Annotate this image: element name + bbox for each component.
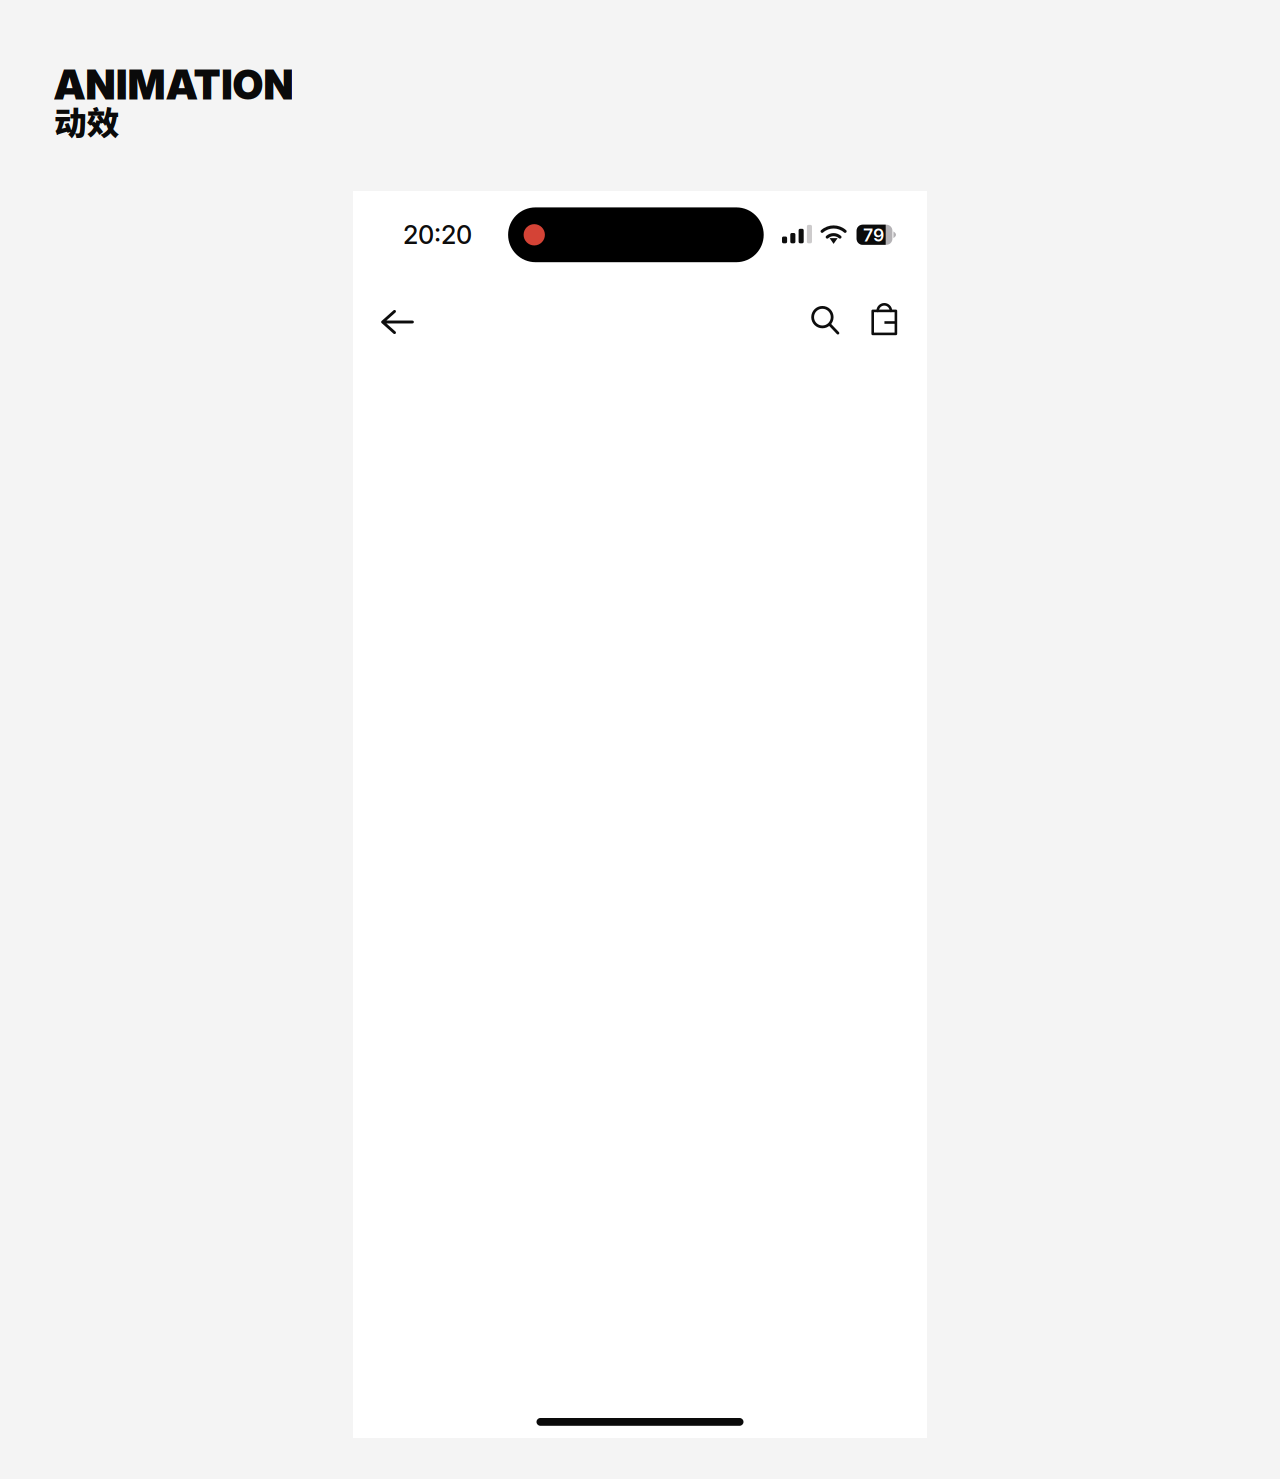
button[interactable]: Search [793,289,857,353]
button[interactable]: Back [365,290,429,354]
staticText: 20:20 [403,219,472,250]
staticText: 79 [863,224,884,246]
staticText: 动效 [54,97,120,144]
staticText: ANIMATION [54,60,293,109]
button[interactable]: Shopping bag [852,288,916,352]
